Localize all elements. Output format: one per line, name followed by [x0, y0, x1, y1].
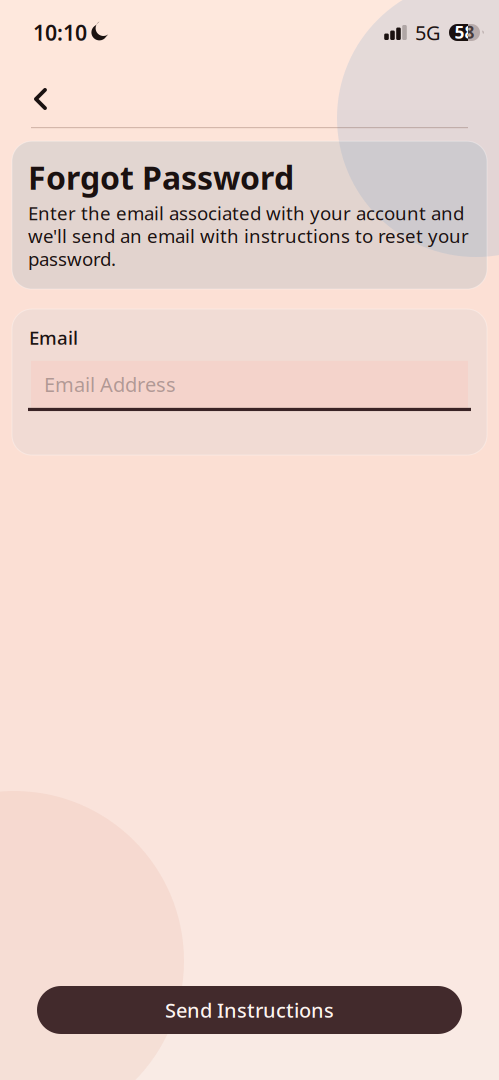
staticText: Email Address	[44, 371, 176, 398]
staticText: Enter the email associated with your acc…	[28, 201, 469, 271]
staticText: 10:10	[33, 18, 87, 47]
staticText: Email	[29, 325, 78, 350]
staticText: 5G	[415, 19, 441, 46]
button[interactable]: Back	[32, 73, 78, 119]
staticText: 58	[454, 20, 474, 43]
staticText: 58	[454, 20, 474, 43]
staticText: Send Instructions	[165, 997, 334, 1023]
button[interactable]: Send Instructions	[37, 986, 462, 1034]
staticText: Forgot Password	[28, 156, 294, 199]
